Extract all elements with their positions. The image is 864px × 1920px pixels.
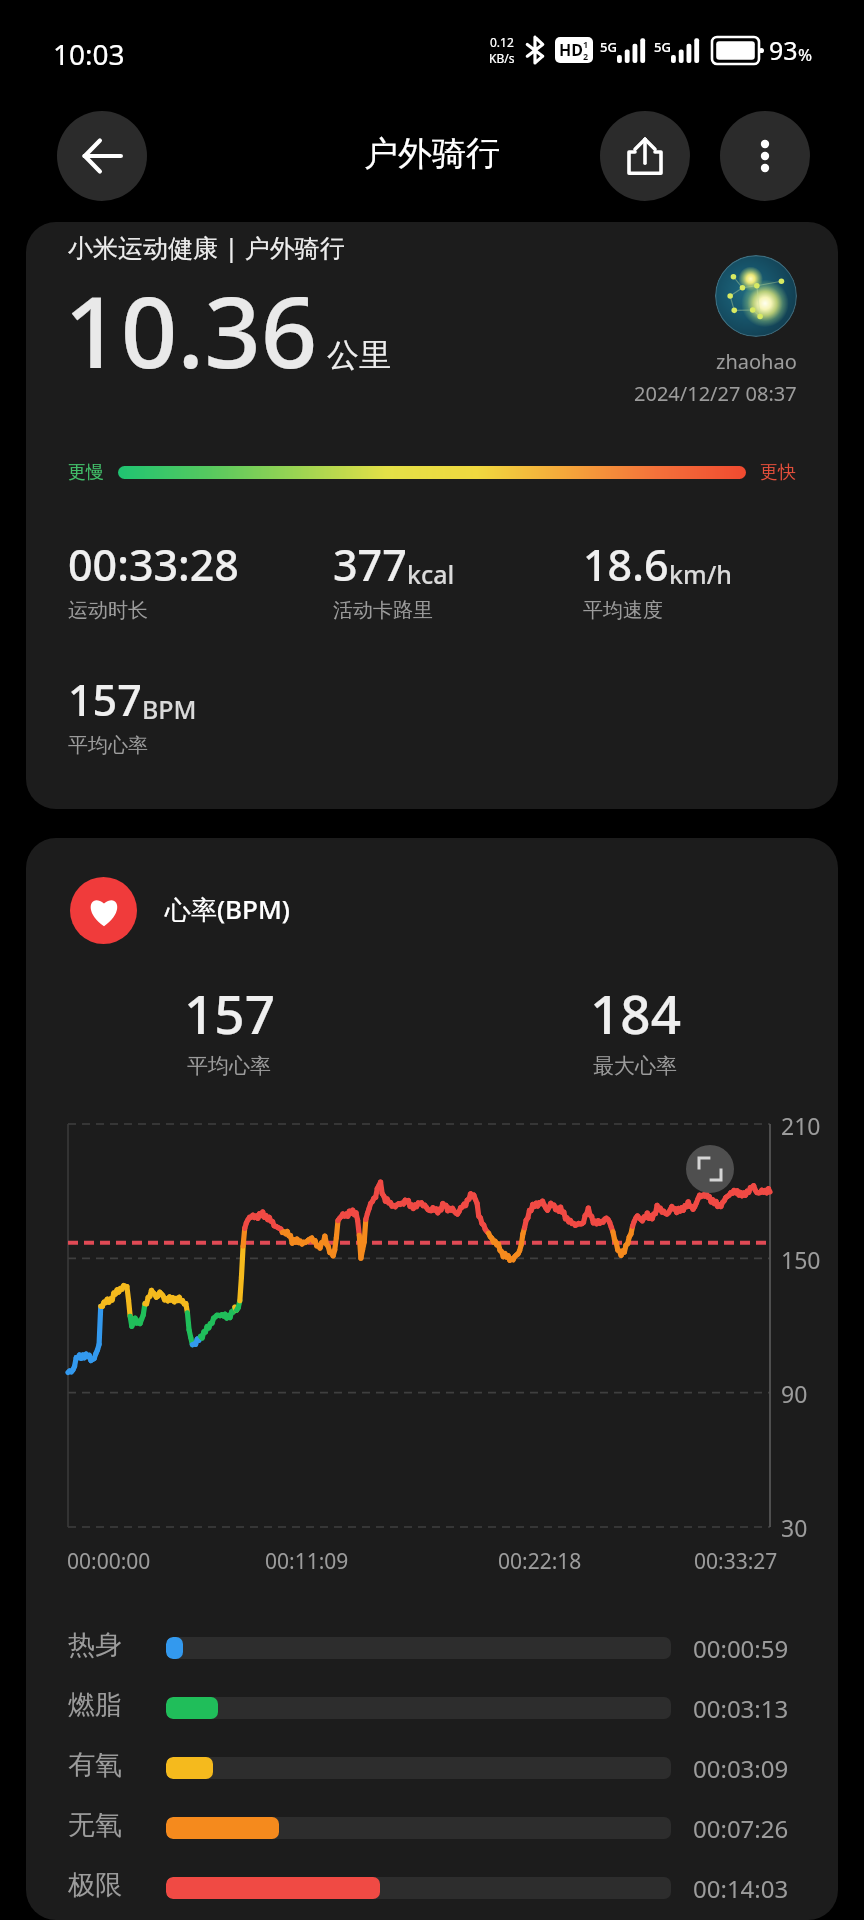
staticText: % xyxy=(798,43,813,66)
staticText: 157 xyxy=(184,977,275,1049)
staticText: 无氧 xyxy=(68,1808,144,1842)
staticText: 210 xyxy=(781,1110,821,1141)
staticText: 2 xyxy=(583,50,589,62)
staticText: 184 xyxy=(590,977,681,1049)
staticText: 燃脂 xyxy=(68,1688,144,1722)
staticText: 00:33:27 xyxy=(694,1547,778,1576)
staticText: 心率(BPM) xyxy=(165,891,290,927)
staticText: kcal xyxy=(407,557,455,591)
staticText: 00:11:09 xyxy=(265,1547,349,1576)
button[interactable]: 极限 xyxy=(26,1858,838,1918)
staticText: 公里 xyxy=(327,335,391,375)
staticText: 00:33:28 xyxy=(68,535,239,594)
staticText: 有氧 xyxy=(68,1748,144,1782)
staticText: BPM xyxy=(142,692,197,726)
staticText: 极限 xyxy=(68,1868,144,1902)
staticText: 00:07:26 xyxy=(693,1812,805,1845)
staticText: 活动卡路里 xyxy=(333,598,433,623)
staticText: km/h xyxy=(669,557,732,591)
staticText: 30 xyxy=(781,1512,808,1543)
staticText: 18.6 xyxy=(583,535,669,594)
staticText: 5G xyxy=(600,38,617,56)
staticText: 平均速度 xyxy=(583,598,663,623)
staticText: 10.36 xyxy=(64,262,318,397)
staticText: 小米运动健康 | 户外骑行 xyxy=(68,230,345,264)
staticText: 00:00:00 xyxy=(67,1547,151,1576)
staticText: zhaohao xyxy=(716,348,797,375)
button[interactable]: 无氧 xyxy=(26,1798,838,1858)
staticText: 00:22:18 xyxy=(498,1547,582,1576)
staticText: 更快 xyxy=(760,461,796,484)
button[interactable]: 热身 xyxy=(26,1618,838,1678)
button[interactable]: Expand chart xyxy=(686,1145,734,1193)
staticText: KB/s xyxy=(489,50,515,66)
staticText: 00:03:13 xyxy=(693,1692,805,1725)
staticText: 户外骑行 xyxy=(364,132,500,175)
staticText: 更慢 xyxy=(68,461,104,484)
staticText: 平均心率 xyxy=(68,733,148,758)
staticText: 2024/12/27 08:37 xyxy=(634,380,797,407)
staticText: 运动时长 xyxy=(68,598,148,623)
staticText: 00:03:09 xyxy=(693,1752,805,1785)
staticText: 150 xyxy=(781,1244,821,1275)
staticText: 0.12 xyxy=(490,34,514,50)
staticText: 157 xyxy=(68,670,142,729)
staticText: 90 xyxy=(781,1378,808,1409)
staticText: 平均心率 xyxy=(187,1053,271,1079)
staticText: 10:03 xyxy=(53,35,125,73)
staticText: 00:14:03 xyxy=(693,1872,805,1905)
staticText: 93 xyxy=(769,33,798,67)
button[interactable]: More options xyxy=(720,111,810,201)
button[interactable]: 燃脂 xyxy=(26,1678,838,1738)
staticText: 最大心率 xyxy=(593,1053,677,1079)
button[interactable]: Share xyxy=(600,111,690,201)
button[interactable]: Back xyxy=(57,111,147,201)
staticText: 00:00:59 xyxy=(693,1632,805,1665)
staticText: HD xyxy=(559,39,583,61)
staticText: 377 xyxy=(333,535,407,594)
button[interactable]: 有氧 xyxy=(26,1738,838,1798)
staticText: 5G xyxy=(654,38,671,56)
staticText: 热身 xyxy=(68,1628,144,1662)
staticText: 1 xyxy=(583,38,589,50)
button[interactable]: 心率(BPM) xyxy=(26,877,838,944)
